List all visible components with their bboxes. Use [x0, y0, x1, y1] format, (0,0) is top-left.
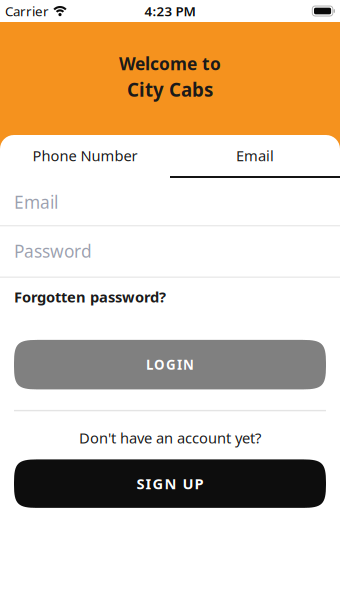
staticText: S I G N U P	[136, 474, 203, 493]
button[interactable]: Phone Number	[0, 135, 170, 178]
button[interactable]: Forgotten password?	[0, 288, 340, 306]
staticText: L O G I N	[146, 356, 194, 373]
staticText: Forgotten password?	[14, 287, 166, 307]
staticText: Phone Number	[32, 146, 137, 165]
button[interactable]: L O G I N	[14, 340, 326, 389]
staticText: Email	[14, 190, 58, 213]
staticText: Email	[236, 146, 274, 165]
staticText: Welcome to	[119, 52, 221, 75]
staticText: Carrier	[5, 2, 49, 20]
staticText: Don't have an account yet?	[79, 428, 261, 448]
button[interactable]: S I G N U P	[14, 459, 326, 508]
staticText: Password	[14, 239, 92, 262]
staticText: City Cabs	[127, 77, 213, 102]
staticText: 4:23 PM	[144, 2, 195, 20]
button[interactable]: Email	[170, 135, 340, 178]
